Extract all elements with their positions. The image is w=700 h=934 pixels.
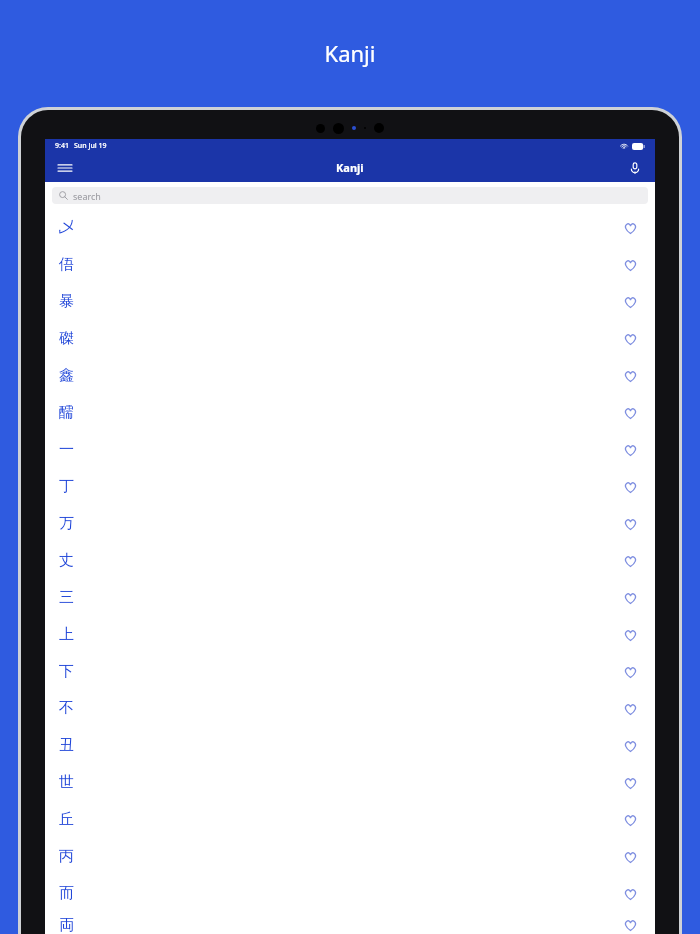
button[interactable]: 不 — [45, 690, 655, 727]
button[interactable]: Bookmark 暴 — [619, 291, 641, 313]
staticText: 丙 — [59, 847, 74, 866]
staticText: 丈 — [59, 551, 74, 570]
staticText: Kanji — [336, 160, 364, 175]
button[interactable]: 三 — [45, 579, 655, 616]
staticText: 上 — [59, 625, 74, 644]
button[interactable]: Bookmark 鑫 — [619, 365, 641, 387]
button[interactable]: Bookmark 醹 — [619, 402, 641, 424]
button[interactable]: Bookmark 一 — [619, 439, 641, 461]
button[interactable]: 磔 — [45, 320, 655, 357]
staticText: search — [73, 190, 101, 202]
button[interactable]: 一 — [45, 431, 655, 468]
button[interactable]: Bookmark 三 — [619, 587, 641, 609]
staticText: 不 — [59, 699, 74, 718]
button[interactable]: Menu — [53, 156, 77, 180]
button[interactable]: 暴 — [45, 283, 655, 320]
staticText: 丁 — [59, 477, 74, 496]
button[interactable]: Bookmark 丘 — [619, 809, 641, 831]
button[interactable]: Bookmark 乄 — [619, 217, 641, 239]
button[interactable]: Bookmark 而 — [619, 883, 641, 905]
button[interactable]: Bookmark 両 — [619, 914, 641, 934]
button[interactable]: Voice search — [623, 156, 647, 180]
button[interactable]: Bookmark 丑 — [619, 735, 641, 757]
button[interactable]: Bookmark 丁 — [619, 476, 641, 498]
button[interactable]: 丙 — [45, 838, 655, 875]
button[interactable]: Bookmark 世 — [619, 772, 641, 794]
staticText: 一 — [59, 440, 74, 459]
button[interactable]: Bookmark 不 — [619, 698, 641, 720]
staticText: 而 — [59, 884, 74, 903]
button[interactable]: Bookmark 丙 — [619, 846, 641, 868]
button[interactable]: 丘 — [45, 801, 655, 838]
staticText: 下 — [59, 662, 74, 681]
button[interactable]: Bookmark 磔 — [619, 328, 641, 350]
staticText: 乄 — [59, 218, 74, 237]
button[interactable]: Bookmark 下 — [619, 661, 641, 683]
staticText: Kanji — [0, 38, 700, 68]
button[interactable]: 而 — [45, 875, 655, 912]
button[interactable]: 鑫 — [45, 357, 655, 394]
staticText: 暴 — [59, 292, 74, 311]
button[interactable]: 丑 — [45, 727, 655, 764]
button[interactable]: 万 — [45, 505, 655, 542]
staticText: 万 — [59, 514, 74, 533]
staticText: 磔 — [59, 329, 74, 348]
staticText: 丘 — [59, 810, 74, 829]
button[interactable]: Bookmark 俉 — [619, 254, 641, 276]
button[interactable]: 醹 — [45, 394, 655, 431]
button[interactable]: 乄 — [45, 209, 655, 246]
staticText: 世 — [59, 773, 74, 792]
staticText: 醹 — [59, 403, 74, 422]
button[interactable]: search — [52, 187, 648, 204]
button[interactable]: Bookmark 上 — [619, 624, 641, 646]
button[interactable]: Bookmark 丈 — [619, 550, 641, 572]
button[interactable]: 上 — [45, 616, 655, 653]
button[interactable]: 丁 — [45, 468, 655, 505]
button[interactable]: 丈 — [45, 542, 655, 579]
staticText: 9:41 — [55, 141, 69, 151]
button[interactable]: 世 — [45, 764, 655, 801]
staticText: 俉 — [59, 255, 74, 274]
staticText: Sun Jul 19 — [74, 141, 107, 151]
staticText: 三 — [59, 588, 74, 607]
button[interactable]: 両 — [45, 912, 655, 934]
button[interactable]: Bookmark 万 — [619, 513, 641, 535]
staticText: 鑫 — [59, 366, 74, 385]
button[interactable]: 下 — [45, 653, 655, 690]
button[interactable]: 俉 — [45, 246, 655, 283]
staticText: 両 — [59, 916, 74, 934]
staticText: 丑 — [59, 736, 74, 755]
